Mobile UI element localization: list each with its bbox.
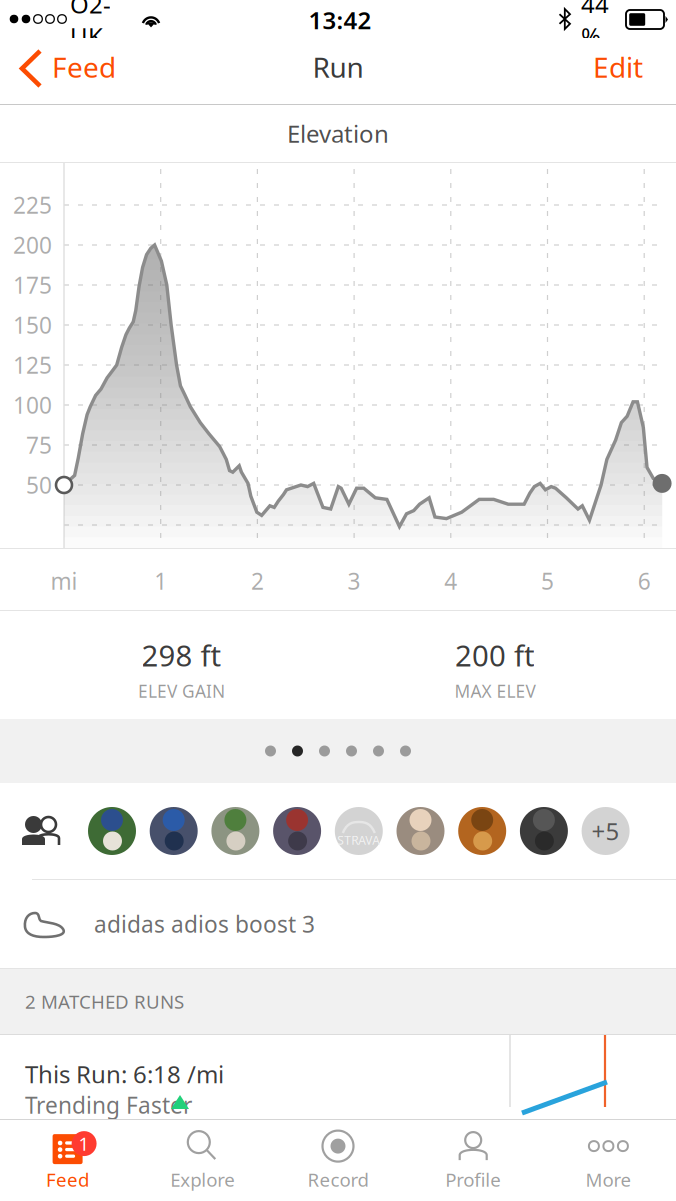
staticText: Feed — [52, 48, 116, 86]
staticText: 1 — [154, 566, 167, 596]
staticText: 150 — [13, 310, 52, 340]
staticText: 5 — [541, 566, 554, 596]
button[interactable]: More — [541, 1127, 676, 1193]
button[interactable]: STRAVA — [0, 783, 676, 879]
staticText: 200 ft — [455, 635, 535, 674]
staticText: 298 ft — [141, 635, 221, 674]
staticText: 13:42 — [308, 4, 371, 36]
staticText: 4 — [444, 566, 457, 596]
staticText: STRAVA — [337, 832, 380, 848]
staticText: This Run: 6:18 /mi — [25, 1058, 224, 1090]
staticText: O2-UK — [70, 0, 111, 52]
staticText: ELEV GAIN — [138, 679, 225, 702]
staticText: Edit — [593, 48, 643, 86]
staticText: More — [585, 1167, 631, 1192]
staticText: adidas adios boost 3 — [94, 909, 315, 939]
staticText: 3 — [348, 566, 361, 596]
staticText: 2 MATCHED RUNS — [25, 989, 184, 1014]
button[interactable]: Profile — [406, 1127, 541, 1193]
staticText: 75 — [26, 430, 52, 460]
staticText: Explore — [170, 1167, 235, 1192]
staticText: Feed — [46, 1167, 89, 1192]
button[interactable]: Feed — [0, 38, 130, 104]
button[interactable]: 1 — [0, 1127, 135, 1193]
staticText: 50 — [26, 470, 52, 500]
staticText: 2 — [251, 566, 264, 596]
button[interactable]: adidas adios boost 3 — [0, 880, 676, 968]
staticText: Profile — [445, 1167, 501, 1192]
staticText: 1 — [79, 1131, 90, 1156]
staticText: Record — [307, 1167, 368, 1192]
staticText: 175 — [13, 270, 52, 300]
staticText: 44% — [581, 0, 609, 52]
staticText: 6 — [638, 566, 651, 596]
staticText: 100 — [13, 390, 52, 420]
staticText: 200 — [13, 230, 52, 260]
staticText: MAX ELEV — [454, 679, 535, 702]
button[interactable]: Explore — [135, 1127, 270, 1193]
staticText: +5 — [592, 815, 620, 847]
button[interactable]: Edit — [546, 38, 676, 96]
staticText: Trending Faster — [25, 1090, 192, 1120]
button[interactable]: Record — [270, 1127, 406, 1193]
staticText: Run — [312, 48, 363, 86]
staticText: Elevation — [287, 118, 389, 149]
staticText: mi — [50, 566, 77, 596]
staticText: 125 — [13, 350, 52, 380]
staticText: 225 — [13, 190, 52, 220]
